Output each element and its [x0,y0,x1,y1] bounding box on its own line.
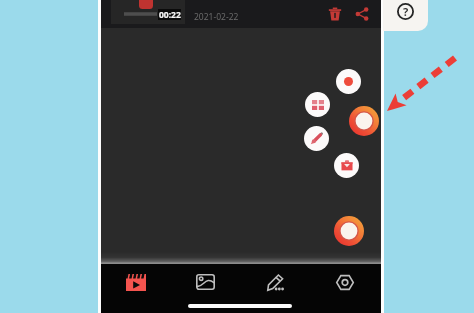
button[interactable]: Delete [326,5,344,23]
button[interactable]: Tool [305,92,330,117]
button[interactable]: Tool [336,69,361,94]
button[interactable]: Share [353,5,371,23]
staticText: 2021-02-22 [194,11,239,23]
staticText: ? [403,4,409,19]
button[interactable]: Videos [125,271,147,293]
button[interactable]: Edit [265,271,287,293]
button[interactable]: Record [334,216,364,246]
button[interactable]: Tool [334,153,359,178]
button[interactable]: Tool [304,126,329,151]
button[interactable]: Record [349,106,379,136]
button[interactable]: Help [383,0,428,31]
button[interactable]: Settings [334,271,356,293]
button[interactable]: Images [194,271,216,293]
staticText: 00:22 [159,9,181,20]
